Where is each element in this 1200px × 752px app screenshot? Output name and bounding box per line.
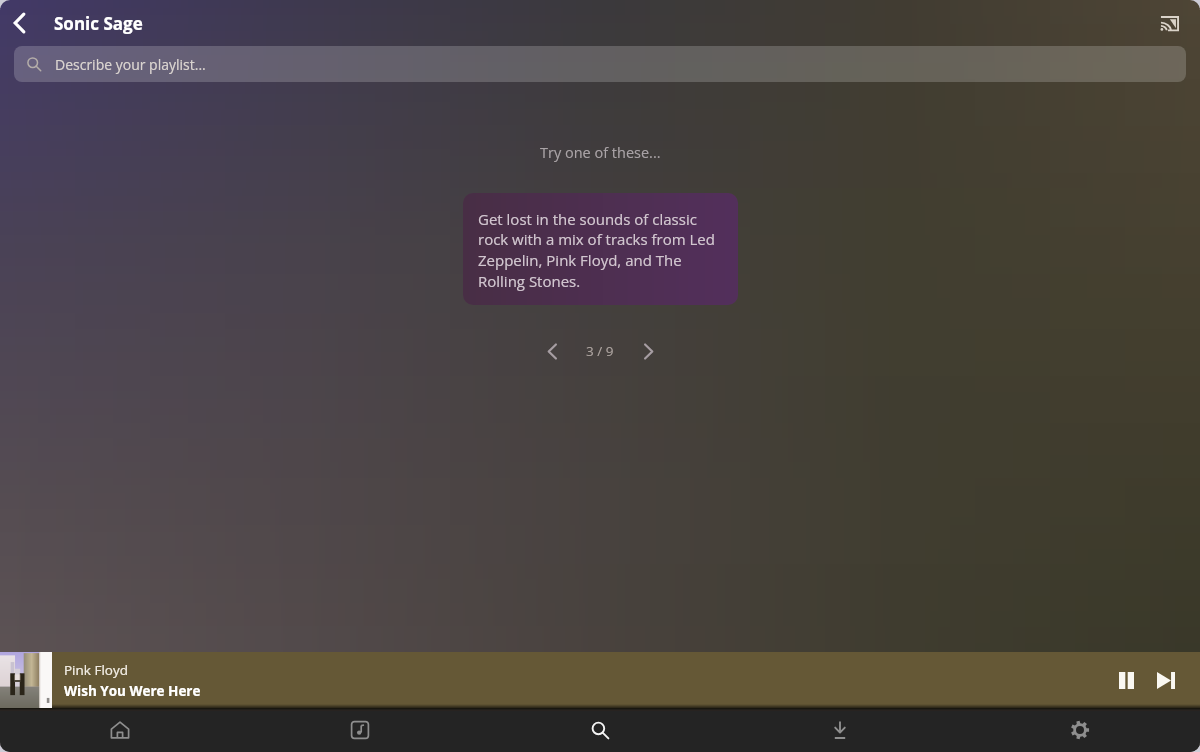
button[interactable]: Pink Floyd: [0, 652, 1200, 708]
button[interactable]: Library: [240, 708, 480, 752]
staticText: Wish You Were Here: [64, 682, 201, 700]
button[interactable]: Cast: [1146, 0, 1192, 46]
staticText: Sonic Sage: [54, 12, 143, 35]
staticText: Describe your playlist...: [55, 55, 206, 74]
button[interactable]: Previous: [534, 333, 570, 369]
button[interactable]: Next track: [1143, 657, 1189, 703]
button[interactable]: Home: [0, 708, 240, 752]
staticText: Get lost in the sounds of classic rock w…: [478, 209, 724, 292]
button[interactable]: Back: [0, 0, 40, 46]
button[interactable]: Get lost in the sounds of classic rock w…: [463, 193, 738, 305]
button[interactable]: Describe your playlist...: [14, 46, 1186, 82]
button[interactable]: Search: [480, 708, 720, 752]
button[interactable]: Pause: [1109, 657, 1143, 703]
button[interactable]: Downloads: [720, 708, 960, 752]
button[interactable]: Next: [630, 333, 666, 369]
staticText: 3 / 9: [586, 342, 614, 360]
button[interactable]: Settings: [960, 708, 1200, 752]
staticText: Try one of these...: [540, 143, 661, 163]
staticText: Pink Floyd: [64, 661, 128, 679]
